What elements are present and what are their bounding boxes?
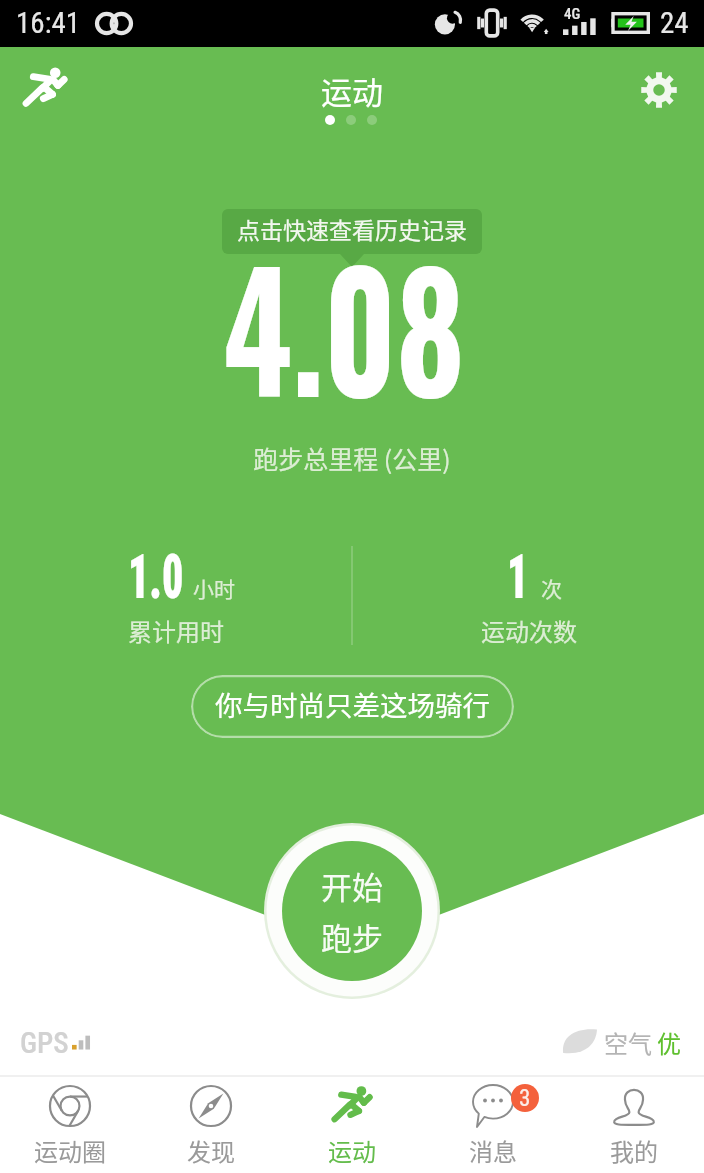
staticText: 小时: [193, 573, 235, 603]
button[interactable]: Settings: [622, 53, 696, 127]
staticText: 1.0: [128, 541, 183, 612]
button[interactable]: 开始: [281, 840, 423, 982]
staticText: 消息: [469, 1133, 517, 1168]
button[interactable]: 运动圈: [0, 1077, 140, 1173]
staticText: 16:41: [16, 6, 81, 40]
button[interactable]: 我的: [563, 1077, 704, 1173]
staticText: 发现: [187, 1133, 235, 1168]
staticText: 运动圈: [34, 1133, 106, 1168]
staticText: 1: [507, 541, 529, 612]
staticText: 4.08: [55, 206, 633, 443]
button[interactable]: 你与时尚只差这场骑行: [191, 675, 514, 738]
staticText: 你与时尚只差这场骑行: [215, 684, 490, 724]
staticText: 我的: [610, 1133, 658, 1168]
button[interactable]: 运动: [281, 1077, 422, 1173]
staticText: 24: [660, 6, 689, 40]
staticText: 3: [519, 1085, 531, 1112]
staticText: 空气: [604, 1025, 652, 1060]
staticText: 运动: [328, 1133, 376, 1168]
button[interactable]: Running history: [8, 52, 82, 126]
staticText: 4G: [564, 5, 581, 23]
button[interactable]: 发现: [140, 1077, 281, 1173]
staticText: 次: [541, 573, 562, 603]
staticText: 优: [657, 1025, 681, 1060]
staticText: 点击快速查看历史记录: [237, 212, 467, 245]
staticText: 开始: [321, 863, 383, 908]
staticText: 跑步: [321, 914, 383, 959]
staticText: 运动次数: [481, 613, 577, 648]
staticText: GPS: [20, 1026, 69, 1060]
staticText: 运动: [0, 68, 704, 113]
staticText: 累计用时: [128, 613, 224, 648]
button[interactable]: 3: [422, 1077, 563, 1173]
staticText: 跑步总里程 (公里): [0, 440, 704, 476]
button[interactable]: 点击快速查看历史记录: [222, 209, 482, 254]
